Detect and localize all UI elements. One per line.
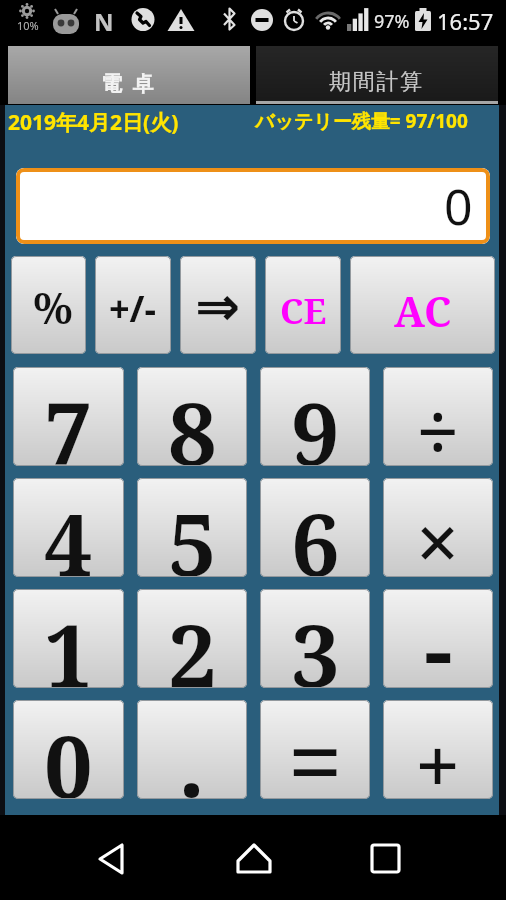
button[interactable]: 2 — [137, 589, 247, 688]
staticText: 8 — [168, 373, 217, 472]
staticText: CE — [280, 287, 327, 335]
staticText: 6 — [291, 484, 340, 583]
button[interactable]: . — [137, 700, 247, 799]
staticText: 7 — [44, 373, 93, 472]
staticText: +/- — [109, 284, 157, 333]
staticText: + — [415, 709, 461, 808]
staticText: N — [94, 5, 114, 38]
button[interactable]: +/- — [95, 256, 171, 354]
button[interactable]: 3 — [260, 589, 370, 688]
button[interactable]: × — [383, 478, 493, 577]
staticText: 97% — [374, 9, 410, 34]
button[interactable]: 5 — [137, 478, 247, 577]
button[interactable] — [350, 824, 420, 894]
staticText: ⇒ — [195, 275, 241, 338]
staticText: 16:57 — [437, 6, 494, 36]
button[interactable]: 期間計算 — [256, 46, 498, 104]
button[interactable]: 電 卓 — [8, 46, 250, 104]
staticText: 4 — [44, 484, 93, 583]
button[interactable]: - — [383, 589, 493, 688]
staticText: 0 — [444, 172, 473, 240]
staticText: ÷ — [416, 378, 460, 477]
staticText: 3 — [291, 595, 340, 694]
staticText: 9 — [291, 373, 340, 472]
staticText: 2019年4月2日(火) — [8, 108, 179, 137]
staticText: % — [33, 277, 73, 337]
staticText: 電 卓 — [101, 69, 157, 98]
staticText: - — [424, 585, 453, 684]
button[interactable]: CE — [265, 256, 341, 354]
button[interactable]: AC — [350, 256, 495, 354]
staticText: × — [415, 486, 461, 585]
staticText: バッテリー残量= 97/100 — [255, 108, 468, 134]
staticText: = — [288, 694, 343, 793]
staticText: 2 — [168, 595, 217, 694]
button[interactable]: = — [260, 700, 370, 799]
staticText: 期間計算 — [329, 68, 425, 96]
staticText: 1 — [44, 595, 93, 694]
button[interactable]: 7 — [13, 367, 124, 466]
staticText: 5 — [168, 484, 217, 583]
button[interactable]: ÷ — [383, 367, 493, 466]
staticText: 0 — [44, 706, 93, 805]
button[interactable]: % — [11, 256, 86, 354]
staticText: . — [178, 699, 206, 798]
button[interactable]: ⇒ — [180, 256, 256, 354]
button[interactable]: 0 — [16, 168, 490, 244]
button[interactable]: 1 — [13, 589, 124, 688]
button[interactable] — [77, 824, 147, 894]
staticText: AC — [394, 283, 452, 339]
button[interactable]: 9 — [260, 367, 370, 466]
button[interactable]: 0 — [13, 700, 124, 799]
button[interactable] — [219, 824, 289, 894]
button[interactable]: + — [383, 700, 493, 799]
staticText: 10% — [17, 18, 39, 33]
button[interactable]: 6 — [260, 478, 370, 577]
button[interactable]: 8 — [137, 367, 247, 466]
button[interactable]: 4 — [13, 478, 124, 577]
